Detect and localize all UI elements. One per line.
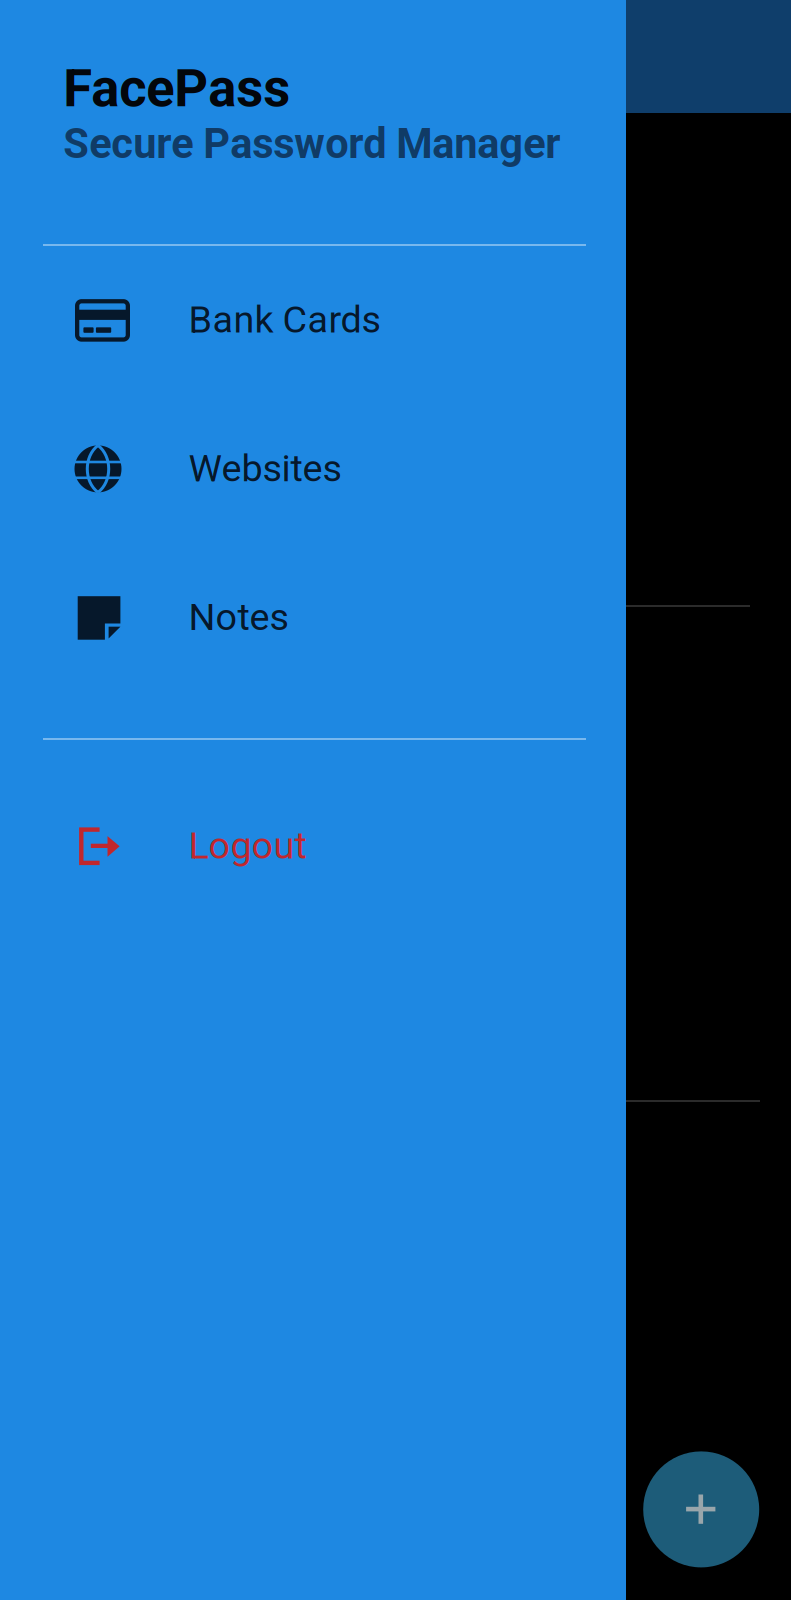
staticText: Logout bbox=[188, 823, 306, 868]
staticText: Bank Cards bbox=[188, 298, 380, 342]
button[interactable]: Add entry bbox=[643, 1451, 759, 1567]
staticText: FacePass bbox=[63, 58, 290, 119]
staticText: Notes bbox=[188, 595, 288, 639]
staticText: Secure Password Manager bbox=[63, 119, 560, 168]
button[interactable]: Bank Cards bbox=[0, 247, 626, 395]
button[interactable]: Websites bbox=[0, 395, 626, 543]
staticText: Websites bbox=[188, 446, 341, 490]
button[interactable]: Notes bbox=[0, 544, 626, 692]
button[interactable]: Logout bbox=[0, 772, 626, 920]
